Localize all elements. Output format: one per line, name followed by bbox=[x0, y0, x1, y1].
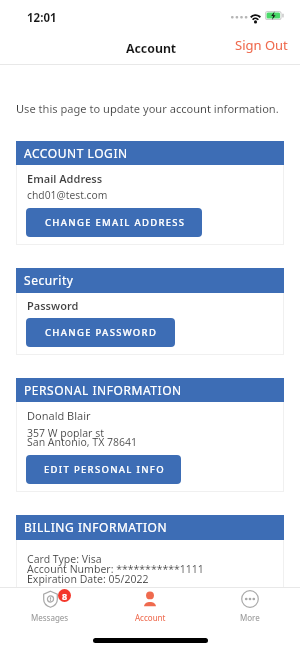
button[interactable]: CHANGE EMAIL ADDRESS bbox=[26, 208, 202, 237]
staticText: Card Type: Visa Account Number: ********… bbox=[27, 552, 204, 586]
other: More bbox=[241, 590, 259, 608]
staticText: 12:01 bbox=[27, 10, 57, 26]
staticText: PERSONAL INFORMATION bbox=[24, 382, 182, 398]
staticText: 357 W poplar st San Antonio, TX 78641 bbox=[27, 426, 138, 450]
staticText: 8 bbox=[62, 590, 68, 602]
staticText: Sign Out bbox=[235, 36, 288, 54]
staticText: EDIT PERSONAL INFO bbox=[44, 463, 165, 476]
staticText: Account bbox=[135, 612, 166, 623]
button[interactable]: Account bbox=[100, 587, 200, 623]
staticText: Security bbox=[24, 272, 74, 288]
button[interactable]: Sign Out bbox=[226, 32, 296, 58]
staticText: ACCOUNT LOGIN bbox=[24, 145, 128, 161]
staticText: More bbox=[240, 612, 260, 623]
other: Messages bbox=[42, 590, 59, 608]
staticText: BILLING INFORMATION bbox=[24, 519, 168, 535]
button[interactable]: EDIT PERSONAL INFO bbox=[26, 455, 181, 484]
button[interactable]: CHANGE PASSWORD bbox=[26, 318, 175, 347]
button[interactable]: More bbox=[200, 587, 300, 623]
staticText: Password bbox=[27, 298, 79, 313]
staticText: Account bbox=[126, 40, 177, 57]
staticText: chd01@test.com bbox=[27, 188, 108, 202]
button[interactable]: Messages bbox=[0, 587, 100, 623]
staticText: Donald Blair bbox=[27, 408, 91, 423]
other: Account bbox=[141, 590, 159, 608]
staticText: Messages bbox=[31, 612, 69, 623]
staticText: Email Address bbox=[27, 171, 103, 186]
staticText: CHANGE PASSWORD bbox=[45, 326, 158, 339]
staticText: CHANGE EMAIL ADDRESS bbox=[45, 216, 186, 229]
staticText: Use this page to update your account inf… bbox=[16, 101, 279, 116]
